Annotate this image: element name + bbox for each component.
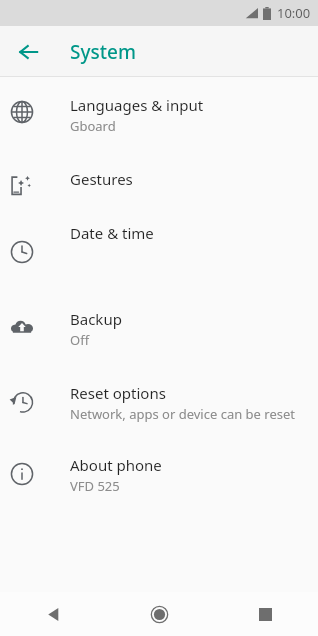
staticText: 10:00 xyxy=(277,4,311,22)
staticText: Off xyxy=(70,331,90,349)
staticText: System xyxy=(70,39,136,65)
button[interactable]: Back xyxy=(0,592,106,636)
staticText: Gestures xyxy=(70,169,133,189)
button[interactable]: Date & time xyxy=(0,219,318,273)
staticText: Date & time xyxy=(70,223,154,243)
button[interactable]: Backup xyxy=(0,305,318,365)
staticText: About phone xyxy=(70,455,162,475)
button[interactable]: Reset options xyxy=(0,379,318,439)
staticText: Languages & input xyxy=(70,95,204,115)
staticText: Network, apps or device can be reset xyxy=(70,405,295,423)
staticText: VFD 525 xyxy=(70,477,120,495)
button[interactable]: Back xyxy=(7,30,51,74)
button[interactable]: Recent apps xyxy=(212,592,318,636)
button[interactable]: Home xyxy=(106,592,212,636)
button[interactable]: Languages & input xyxy=(0,91,318,151)
button[interactable]: About phone xyxy=(0,451,318,511)
staticText: Backup xyxy=(70,309,122,329)
staticText: Reset options xyxy=(70,383,166,403)
button[interactable]: Gestures xyxy=(0,165,318,219)
staticText: Gboard xyxy=(70,117,116,135)
